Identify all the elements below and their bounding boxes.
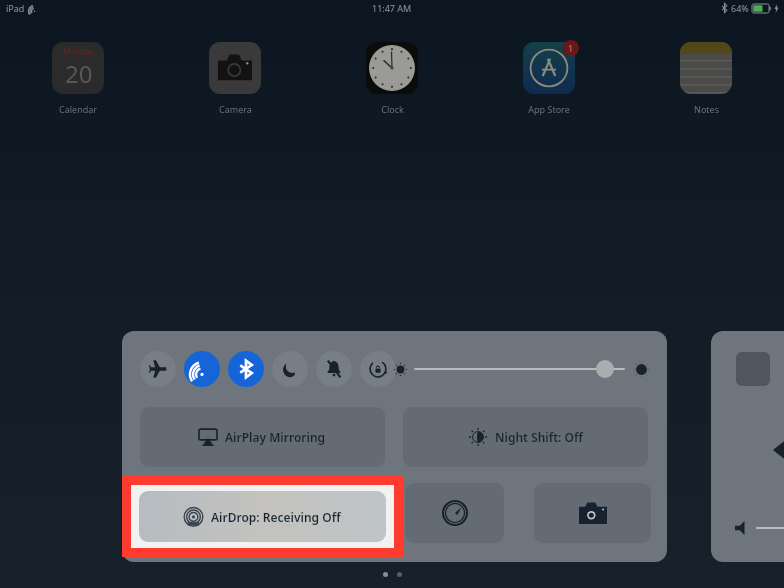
staticText: Camera xyxy=(219,103,252,115)
button[interactable]: Clock xyxy=(360,42,424,115)
button[interactable]: Brightness xyxy=(596,360,614,378)
staticText: Night Shift: Off xyxy=(495,429,583,445)
button[interactable]: Camera xyxy=(203,42,267,115)
staticText: AirPlay Mirroring xyxy=(225,429,326,445)
staticText: Notes xyxy=(694,103,719,115)
button[interactable]: Bluetooth xyxy=(228,351,264,387)
button[interactable]: Camera xyxy=(534,483,651,543)
button[interactable]: AirDrop: Receiving Off xyxy=(139,491,386,542)
button[interactable]: Night Shift: Off xyxy=(403,407,648,467)
button[interactable]: Mute xyxy=(316,351,352,387)
staticText: 20 xyxy=(65,57,93,90)
button[interactable]: AirPlay Mirroring xyxy=(140,407,385,467)
button[interactable]: 1 xyxy=(517,42,581,115)
button[interactable]: Wi-Fi xyxy=(184,351,220,387)
staticText: Monday xyxy=(63,46,94,57)
staticText: Clock xyxy=(381,103,404,115)
button[interactable]: Notes xyxy=(674,42,738,115)
staticText: iPad xyxy=(6,2,25,14)
staticText: 11:47 AM xyxy=(372,2,412,14)
button[interactable]: Timer xyxy=(405,483,504,543)
button[interactable]: Airplane Mode xyxy=(140,351,176,387)
button[interactable]: Monday xyxy=(46,42,110,115)
staticText: 64% xyxy=(731,2,749,14)
staticText: AirDrop: Receiving Off xyxy=(211,509,341,525)
staticText: App Store xyxy=(528,103,570,115)
button[interactable]: Rotation Lock xyxy=(360,351,396,387)
button[interactable]: Do Not Disturb xyxy=(272,351,308,387)
staticText: Calendar xyxy=(59,103,97,115)
staticText: 1 xyxy=(568,42,574,54)
